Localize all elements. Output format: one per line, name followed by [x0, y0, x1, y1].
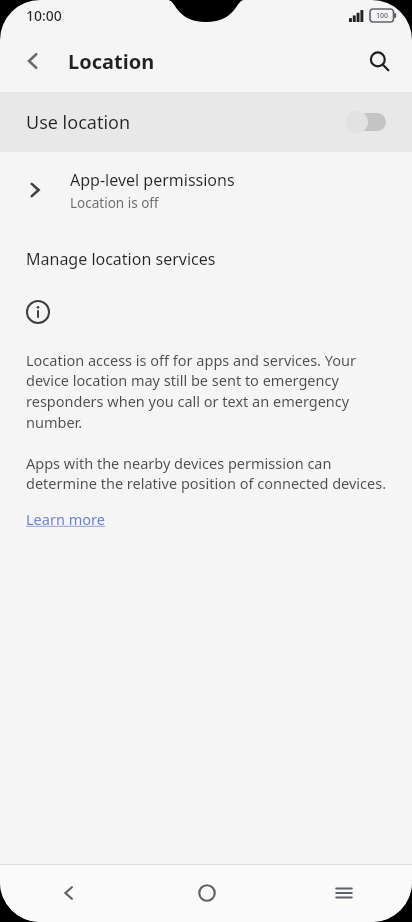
staticText: Manage location services: [26, 248, 216, 270]
button[interactable]: Search: [356, 38, 402, 84]
staticText: Location access is off for apps and serv…: [26, 350, 390, 433]
staticText: Learn more: [26, 509, 105, 529]
staticText: App-level permissions: [70, 169, 235, 191]
button[interactable]: Learn more: [26, 509, 105, 529]
staticText: 100: [376, 11, 389, 21]
button[interactable]: Recent apps: [275, 864, 412, 922]
button[interactable]: Back: [10, 38, 56, 84]
staticText: 10:00: [26, 6, 62, 25]
button[interactable]: Back: [0, 864, 138, 922]
staticText: Use location: [26, 110, 131, 135]
staticText: Apps with the nearby devices permission …: [26, 453, 390, 494]
button[interactable]: Use location: [0, 92, 412, 152]
button[interactable]: Manage location services: [0, 228, 412, 290]
button[interactable]: Home: [138, 864, 275, 922]
button[interactable]: App-level permissions: [0, 152, 412, 228]
staticText: Location is off: [70, 194, 159, 212]
staticText: Location: [68, 48, 155, 75]
